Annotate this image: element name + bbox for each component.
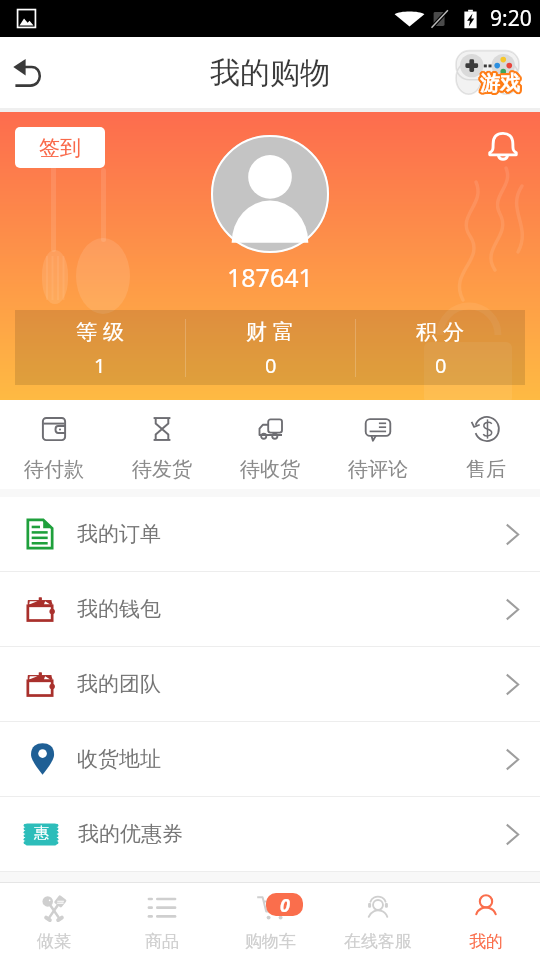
- staticText: 游戏: [482, 71, 522, 96]
- button[interactable]: 我的订单: [0, 497, 540, 571]
- button[interactable]: 待评论: [324, 400, 432, 489]
- button[interactable]: 签到: [15, 127, 105, 168]
- button[interactable]: 待付款: [0, 400, 108, 489]
- staticText: 我的: [469, 931, 503, 952]
- staticText: 签到: [39, 135, 81, 161]
- staticText: 待评论: [348, 457, 408, 482]
- button[interactable]: 商品: [108, 883, 216, 960]
- staticText: 商品: [145, 931, 179, 952]
- staticText: 惠: [34, 824, 49, 843]
- staticText: 游戏: [481, 69, 521, 94]
- staticText: 我的团队: [77, 671, 161, 697]
- staticText: 财 富: [246, 317, 295, 346]
- staticText: 0: [265, 352, 277, 379]
- staticText: 我的订单: [77, 521, 161, 547]
- button[interactable]: 积 分: [356, 310, 525, 385]
- button[interactable]: 待发货: [108, 400, 216, 489]
- staticText: 游戏: [481, 70, 521, 95]
- staticText: 游戏: [478, 72, 518, 97]
- staticText: 游戏: [481, 71, 521, 96]
- button[interactable]: 做菜: [0, 883, 108, 960]
- button[interactable]: 我的钱包: [0, 572, 540, 646]
- staticText: 游戏: [479, 72, 519, 97]
- staticText: 做菜: [37, 931, 71, 952]
- staticText: 游戏: [480, 71, 520, 96]
- button[interactable]: 收货地址: [0, 722, 540, 796]
- staticText: 游戏: [480, 69, 520, 94]
- staticText: 积 分: [416, 317, 465, 346]
- staticText: 售后: [466, 457, 506, 482]
- button[interactable]: 游戏: [452, 46, 522, 100]
- staticText: 购物车: [245, 931, 296, 952]
- staticText: 待付款: [24, 457, 84, 482]
- staticText: 游戏: [479, 71, 519, 96]
- staticText: 游戏: [478, 71, 518, 96]
- button[interactable]: 待收货: [216, 400, 324, 489]
- button[interactable]: 0: [216, 883, 324, 960]
- staticText: 游戏: [481, 72, 521, 97]
- staticText: 游戏: [479, 70, 519, 95]
- staticText: 我的优惠券: [78, 821, 183, 847]
- staticText: 待收货: [240, 457, 300, 482]
- staticText: 待发货: [132, 457, 192, 482]
- staticText: 游戏: [481, 73, 521, 98]
- button[interactable]: 惠: [0, 797, 540, 871]
- staticText: 游戏: [479, 69, 519, 94]
- staticText: 0: [435, 352, 447, 379]
- staticText: 187641: [227, 260, 313, 294]
- staticText: 游戏: [479, 73, 519, 98]
- staticText: 游戏: [480, 70, 520, 95]
- staticText: 等 级: [76, 317, 125, 346]
- button[interactable]: 我的团队: [0, 647, 540, 721]
- button[interactable]: Notifications: [480, 123, 526, 169]
- staticText: 0: [280, 893, 290, 916]
- staticText: 9:20: [490, 4, 532, 33]
- staticText: 收货地址: [77, 746, 161, 772]
- staticText: 游戏: [482, 70, 522, 95]
- button[interactable]: 我的: [432, 883, 540, 960]
- button[interactable]: 等 级: [15, 310, 185, 385]
- button[interactable]: 在线客服: [324, 883, 432, 960]
- staticText: 游戏: [480, 72, 520, 97]
- staticText: 游戏: [482, 72, 522, 97]
- staticText: 1: [94, 352, 106, 379]
- staticText: 我的购物: [210, 54, 330, 92]
- button[interactable]: 售后: [432, 400, 540, 489]
- staticText: 我的钱包: [77, 596, 161, 622]
- button[interactable]: Back: [0, 45, 56, 101]
- staticText: 在线客服: [344, 931, 412, 952]
- staticText: 游戏: [480, 73, 520, 98]
- staticText: 游戏: [478, 70, 518, 95]
- button[interactable]: 财 富: [186, 310, 355, 385]
